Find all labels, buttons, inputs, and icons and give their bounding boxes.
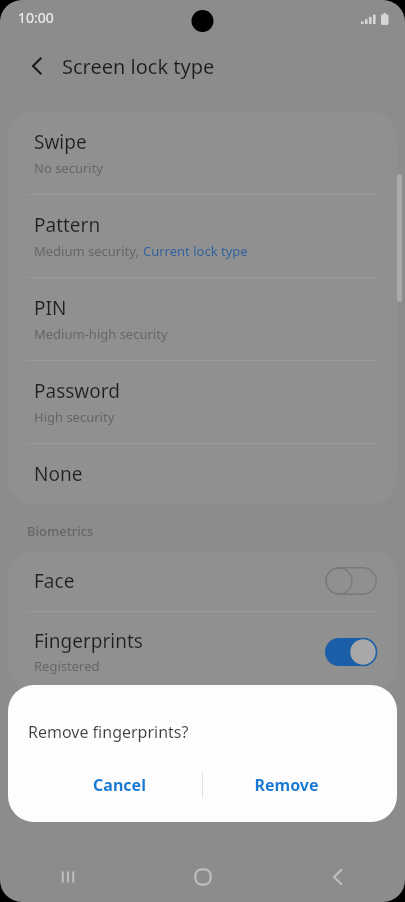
staticText: Fingerprints xyxy=(34,628,143,654)
button[interactable]: Pattern xyxy=(8,195,397,277)
button[interactable]: Recents xyxy=(0,852,135,902)
staticText: Face xyxy=(34,568,75,594)
button[interactable]: Home xyxy=(135,852,270,902)
button[interactable]: Face toggle xyxy=(325,567,377,595)
staticText: Swipe xyxy=(34,129,87,155)
staticText: No security xyxy=(34,159,104,177)
staticText: Pattern xyxy=(34,212,101,238)
staticText: Password xyxy=(34,378,120,404)
staticText: None xyxy=(34,461,83,487)
staticText: Medium-high security xyxy=(34,325,168,343)
staticText: High security xyxy=(34,408,115,426)
staticText: Biometrics xyxy=(27,522,94,540)
staticText: Medium security, xyxy=(34,242,143,260)
button[interactable]: Face xyxy=(8,551,397,611)
staticText: Registered xyxy=(34,657,100,675)
button[interactable]: Password xyxy=(8,361,397,443)
button[interactable]: Cancel xyxy=(36,763,202,807)
button[interactable]: PIN xyxy=(8,278,397,360)
button[interactable]: Back xyxy=(22,51,52,81)
staticText: 10:00 xyxy=(18,8,54,27)
staticText: Remove xyxy=(254,774,319,796)
button[interactable]: Back xyxy=(270,852,405,902)
staticText: Current lock type xyxy=(143,242,248,260)
staticText: Remove fingerprints? xyxy=(28,721,189,743)
staticText: Cancel xyxy=(93,774,146,796)
button[interactable]: Fingerprints toggle xyxy=(325,638,377,666)
button[interactable]: Swipe xyxy=(8,112,397,194)
button[interactable]: Fingerprints xyxy=(8,612,397,691)
staticText: Screen lock type xyxy=(62,53,215,80)
button[interactable]: None xyxy=(8,444,397,504)
staticText: PIN xyxy=(34,295,67,321)
button[interactable]: Remove xyxy=(203,763,369,807)
